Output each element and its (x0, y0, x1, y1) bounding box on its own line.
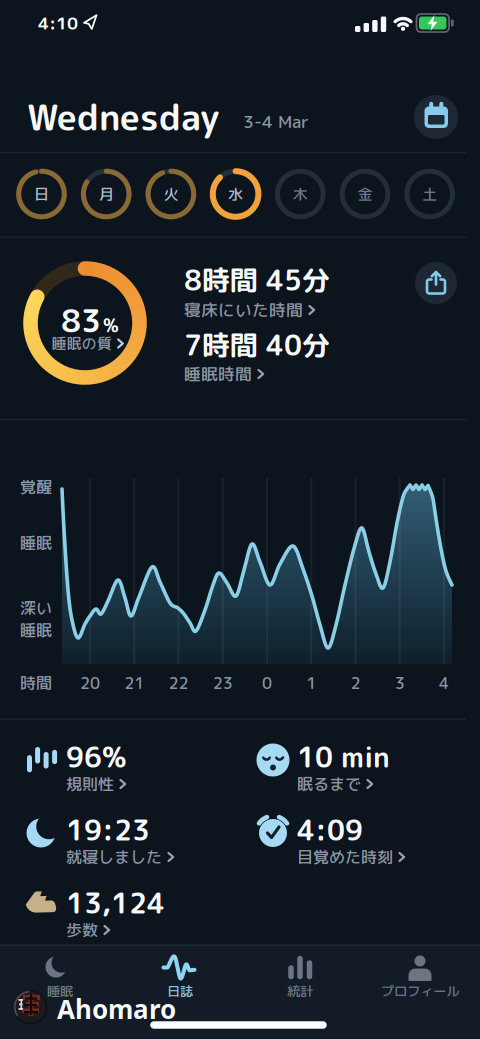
button[interactable]: 日誌 (120, 945, 240, 1005)
staticText: 21 (124, 672, 144, 694)
staticText: 日 (34, 183, 49, 204)
button[interactable]: 木 (272, 166, 328, 222)
staticText: 日誌 (167, 982, 193, 1000)
staticText: 3 (395, 672, 405, 694)
button[interactable]: 睡眠時間 (184, 362, 364, 386)
button[interactable]: 水 (208, 166, 264, 222)
staticText: 木 (293, 183, 308, 204)
staticText: 目覚めた時刻 (297, 846, 393, 868)
button[interactable]: 日 (13, 166, 69, 222)
staticText: 眠るまで (297, 773, 361, 795)
button[interactable]: プロフィール (360, 945, 480, 1005)
staticText: 83 (61, 299, 101, 342)
staticText: 96% (66, 737, 126, 777)
staticText: 2 (350, 672, 360, 694)
staticText: 23 (213, 672, 233, 694)
staticText: 睡眠時間 (184, 362, 252, 386)
staticText: 金 (357, 183, 372, 204)
staticText: 深い 睡眠 (20, 597, 52, 641)
button[interactable]: 火 (143, 166, 199, 222)
staticText: 覚醒 (20, 476, 52, 498)
staticText: 土 (422, 183, 437, 204)
button[interactable]: 96% (18, 729, 233, 793)
button[interactable]: 土 (402, 166, 458, 222)
button[interactable]: 83 (10, 248, 160, 398)
staticText: プロフィール (381, 982, 459, 1000)
staticText: 4:10 (38, 11, 78, 35)
staticText: 時間 (20, 672, 52, 694)
staticText: 10 min (297, 737, 390, 777)
staticText: 20 (80, 672, 100, 694)
staticText: 睡眠 (20, 532, 52, 554)
staticText: 月 (99, 183, 114, 204)
staticText: 就寝しました (66, 846, 162, 868)
button[interactable]: 統計 (240, 945, 360, 1005)
staticText: 睡眠 (47, 982, 73, 1000)
button[interactable]: 月 (78, 166, 134, 222)
staticText: 8時間 45分 (184, 260, 330, 300)
staticText: 統計 (287, 982, 313, 1000)
staticText: 火 (163, 183, 178, 204)
staticText: 歩数 (66, 919, 98, 941)
staticText: 4 (439, 672, 449, 694)
staticText: 22 (168, 672, 188, 694)
staticText: 睡眠の質 (52, 333, 112, 354)
button[interactable]: 4:09 (249, 802, 464, 866)
staticText: 1 (306, 672, 316, 694)
staticText: 7時間 40分 (184, 325, 330, 365)
staticText: 3-4 Mar (243, 109, 309, 134)
button[interactable]: 19:23 (18, 802, 233, 866)
button[interactable]: 寝床にいた時間 (184, 298, 364, 322)
staticText: 4:09 (297, 810, 363, 850)
staticText: 水 (228, 183, 243, 204)
button[interactable]: 10 min (249, 729, 464, 793)
staticText: Ahomaro (57, 991, 176, 1027)
staticText: % (103, 313, 119, 338)
staticText: 規則性 (66, 773, 114, 795)
staticText: Wednesday (27, 92, 219, 142)
button[interactable]: Share (415, 262, 457, 304)
staticText: 13,124 (66, 883, 165, 923)
button[interactable]: 金 (337, 166, 393, 222)
staticText: 0 (262, 672, 272, 694)
button[interactable]: 13,124 (18, 875, 233, 939)
button[interactable]: Calendar (414, 95, 458, 139)
staticText: 寝床にいた時間 (184, 298, 303, 322)
staticText: 19:23 (66, 810, 150, 850)
button[interactable]: 睡眠 (0, 945, 120, 1005)
